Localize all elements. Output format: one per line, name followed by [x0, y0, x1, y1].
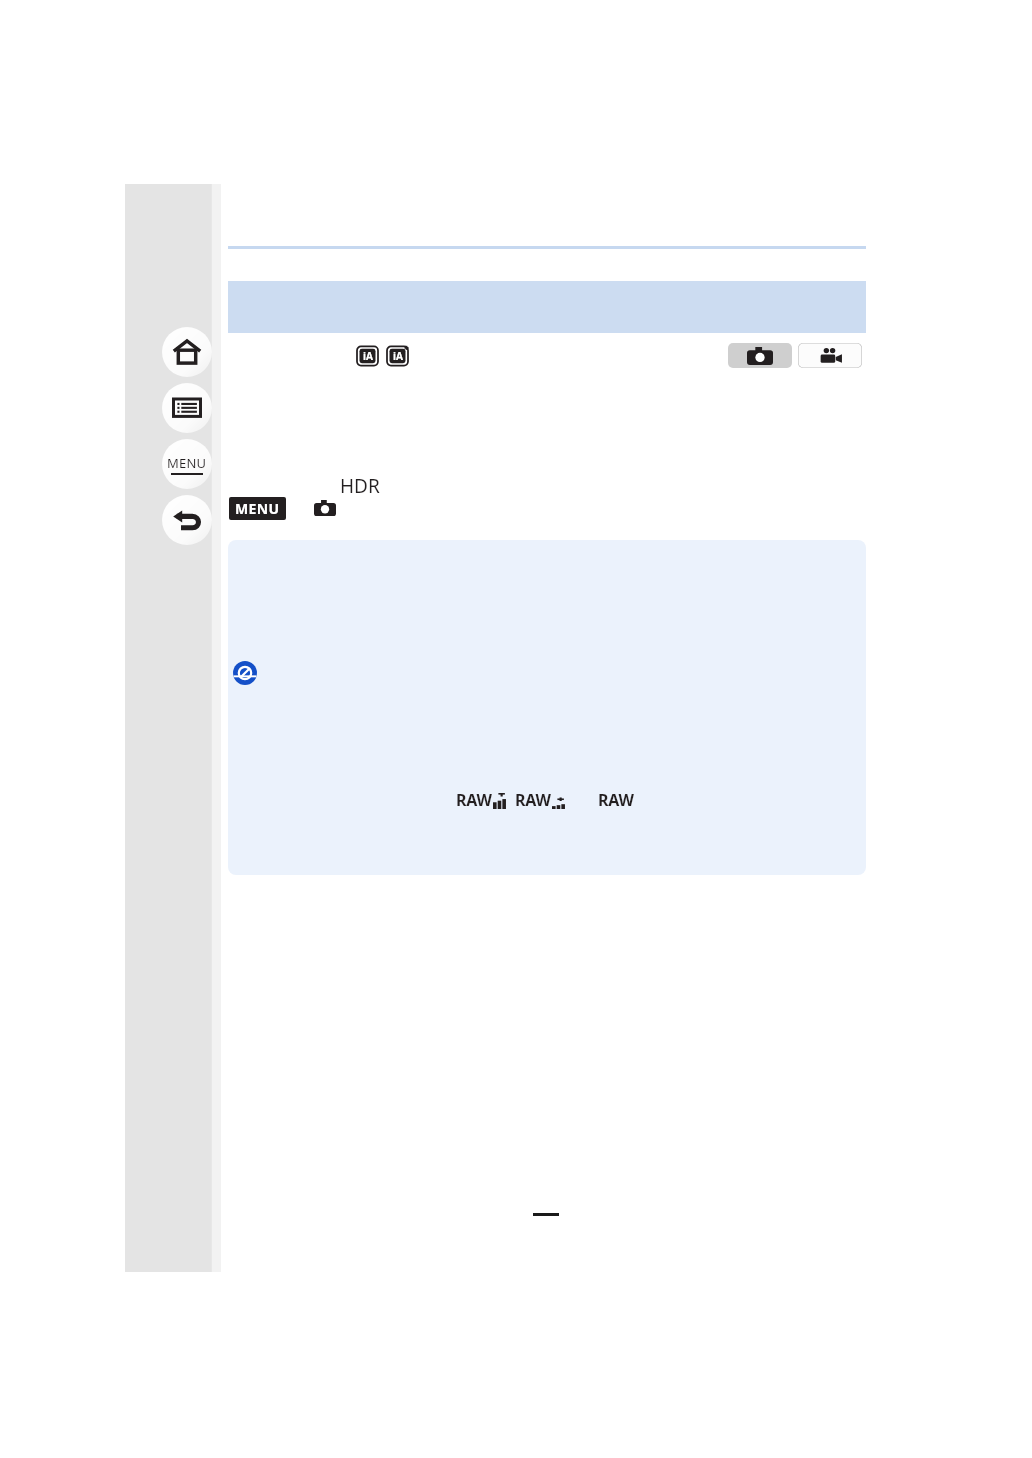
staticText: HDR — [340, 473, 380, 499]
button[interactable]: Home — [162, 327, 212, 377]
button[interactable]: RAW — [515, 789, 570, 811]
other: Menu — [167, 454, 207, 475]
staticText: iA — [393, 349, 403, 363]
button[interactable]: Menu — [162, 439, 212, 489]
other: Contents list — [172, 393, 202, 423]
button[interactable]: RAW — [598, 789, 634, 811]
button[interactable]: Back — [162, 495, 212, 545]
button[interactable]: Intelligent Auto Plus — [385, 344, 410, 368]
button[interactable]: Video mode — [798, 343, 862, 368]
other: Home — [172, 337, 202, 367]
button[interactable]: Photo mode — [728, 343, 792, 368]
staticText: RAW — [598, 789, 634, 811]
staticText: iA — [363, 349, 373, 363]
button[interactable]: MENU — [229, 497, 286, 520]
other: Back — [172, 505, 202, 535]
button[interactable]: RAW — [456, 789, 511, 811]
staticText: RAW — [456, 789, 492, 811]
staticText: RAW — [515, 789, 551, 811]
staticText: MENU — [167, 454, 207, 472]
button[interactable]: Contents list — [162, 383, 212, 433]
staticText: MENU — [235, 499, 280, 518]
button[interactable]: Intelligent Auto — [355, 344, 380, 368]
